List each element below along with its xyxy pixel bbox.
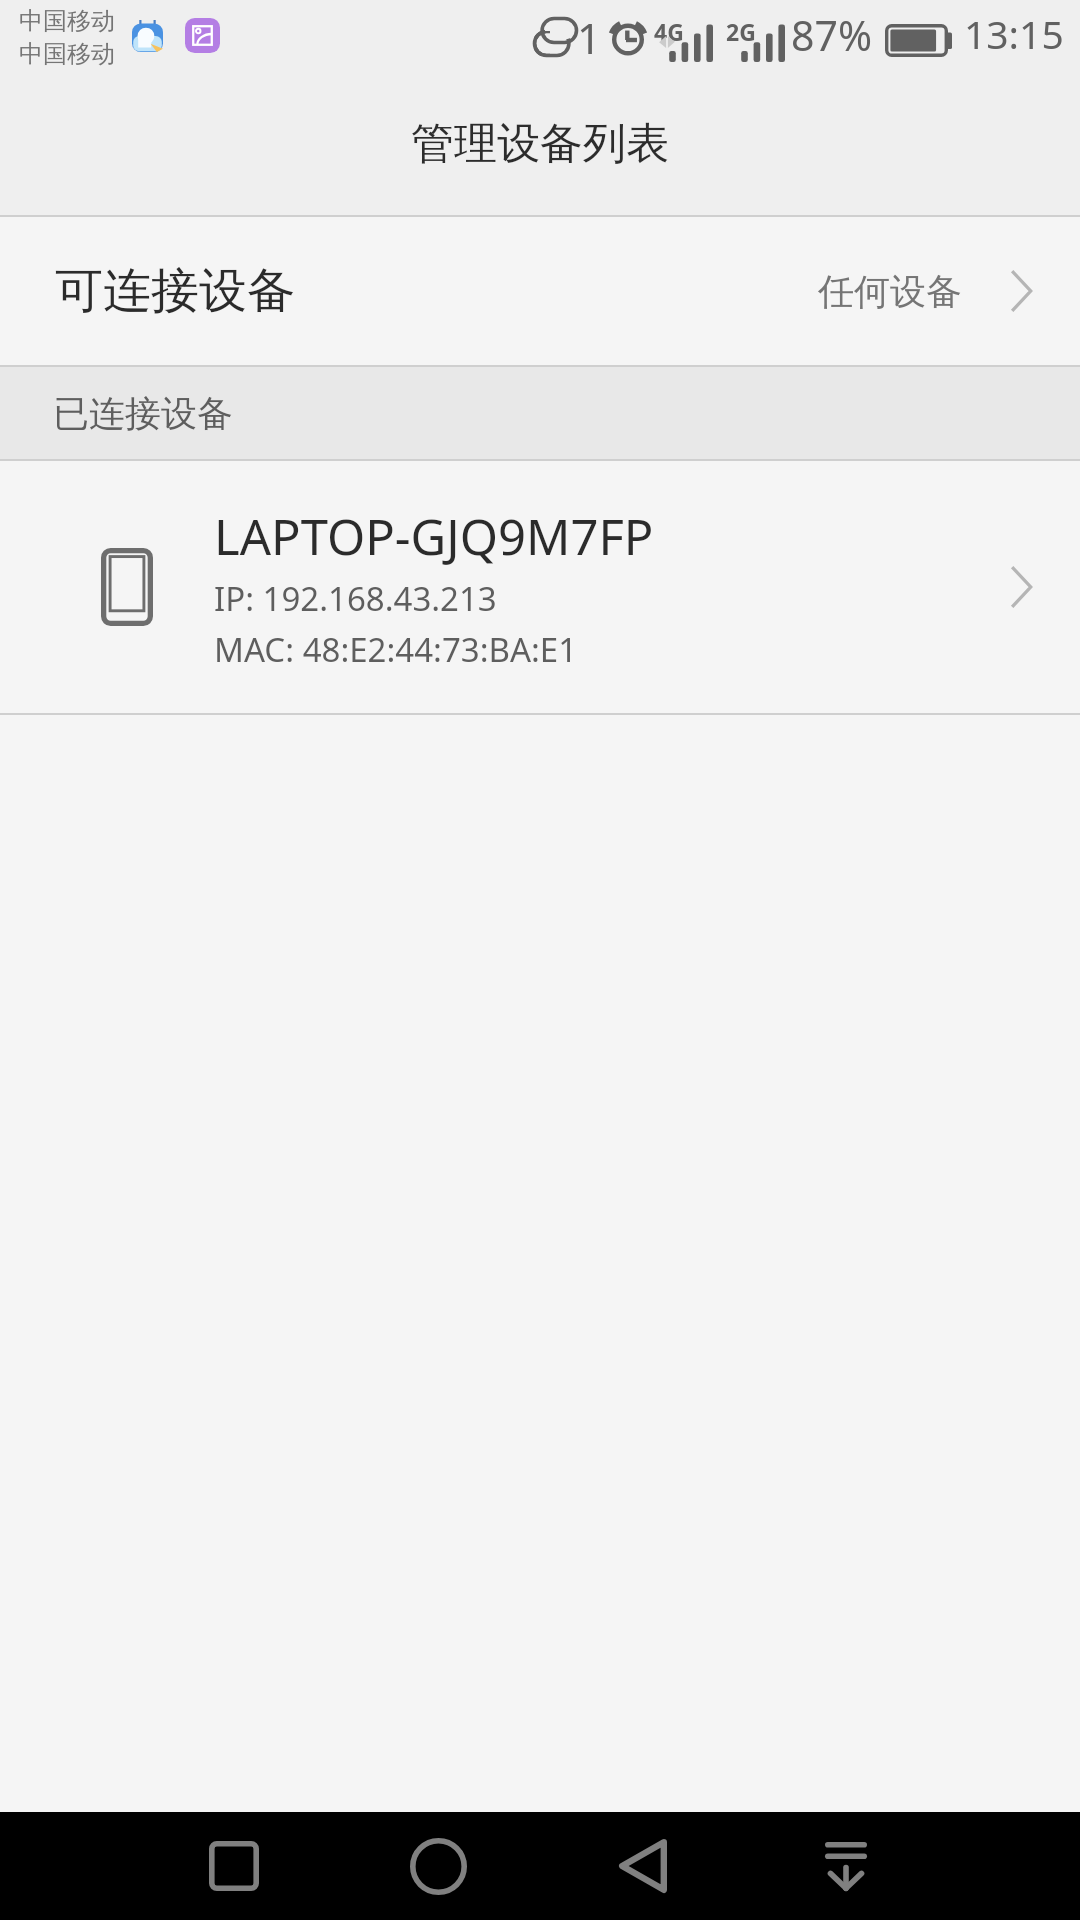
staticText: 2G xyxy=(726,16,756,47)
staticText: 1 xyxy=(577,9,602,66)
button[interactable]: Pull down notifications xyxy=(744,1812,948,1920)
staticText: 4G xyxy=(654,16,684,47)
button[interactable]: Recent apps xyxy=(132,1812,336,1920)
staticText: IP: 192.168.43.213 xyxy=(214,576,497,621)
button[interactable]: Back xyxy=(540,1812,744,1920)
staticText: 13:15 xyxy=(964,7,1064,60)
button[interactable]: LAPTOP-GJQ9M7FP xyxy=(0,461,1080,713)
staticText: 管理设备列表 xyxy=(411,117,669,171)
staticText: 中国移动 xyxy=(19,39,115,69)
staticText: 已连接设备 xyxy=(53,391,233,436)
button[interactable]: Home xyxy=(336,1812,540,1920)
staticText: 任何设备 xyxy=(818,269,962,314)
staticText: 中国移动 xyxy=(19,6,115,36)
staticText: LAPTOP-GJQ9M7FP xyxy=(214,503,654,570)
staticText: 87% xyxy=(791,7,872,63)
staticText: MAC: 48:E2:44:73:BA:E1 xyxy=(214,627,578,672)
staticText: 可连接设备 xyxy=(55,261,295,321)
button[interactable]: 可连接设备 xyxy=(0,217,1080,365)
